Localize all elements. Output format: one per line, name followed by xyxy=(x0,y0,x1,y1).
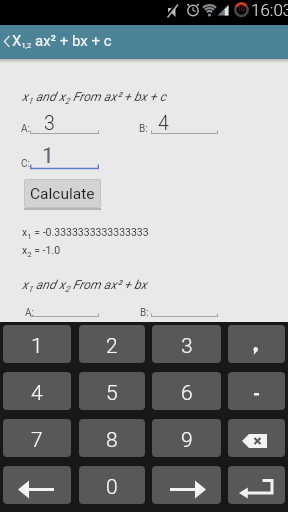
staticText: C: xyxy=(21,158,30,170)
button[interactable]: Calculate xyxy=(24,179,101,208)
staticText: 4 xyxy=(31,381,43,406)
button[interactable]: 8 xyxy=(79,419,145,457)
button[interactable]: 4 xyxy=(151,112,219,134)
button[interactable]: 9 xyxy=(152,419,221,457)
button[interactable] xyxy=(228,372,285,410)
staticText: x2 = -1.0 xyxy=(22,244,61,259)
staticText: 3 xyxy=(44,112,55,134)
staticText: A: xyxy=(25,307,34,319)
button[interactable] xyxy=(228,325,285,363)
button[interactable] xyxy=(0,25,26,59)
staticText: 9 xyxy=(181,428,193,453)
button[interactable] xyxy=(152,466,221,504)
staticText: 3 xyxy=(181,334,193,359)
button[interactable]: 7 xyxy=(3,419,71,457)
button[interactable]: 3 xyxy=(30,112,99,134)
staticText: Calculate xyxy=(30,185,95,203)
staticText: x1 and x2 From ax² + bx + c xyxy=(22,89,167,106)
button[interactable]: 1 xyxy=(3,325,71,363)
staticText: 5 xyxy=(106,381,118,406)
staticText: ax² + bx + c xyxy=(35,32,112,50)
button[interactable]: 6 xyxy=(152,372,221,410)
staticText: X1,2 xyxy=(12,32,32,50)
button[interactable] xyxy=(228,419,285,457)
staticText: 8 xyxy=(106,428,118,453)
button[interactable]: 3 xyxy=(152,325,221,363)
staticText: B: xyxy=(140,307,149,319)
staticText: A: xyxy=(21,123,30,135)
staticText: 10 xyxy=(237,5,245,13)
staticText: 1 xyxy=(42,145,53,168)
staticText: 16:03 xyxy=(251,0,288,20)
staticText: 0 xyxy=(106,475,118,500)
button[interactable]: 5 xyxy=(79,372,145,410)
button[interactable]: 0 xyxy=(79,466,145,504)
staticText: 1 xyxy=(31,334,43,359)
button[interactable] xyxy=(228,466,285,504)
staticText: 4 xyxy=(158,112,169,134)
staticText: 7 xyxy=(31,428,43,453)
staticText: x1 and x2 From ax² + bx xyxy=(22,277,147,294)
staticText: 2 xyxy=(106,334,118,359)
staticText: B: xyxy=(139,123,148,135)
button[interactable]: 1 xyxy=(30,145,99,168)
button[interactable] xyxy=(3,466,71,504)
button[interactable]: 4 xyxy=(3,372,71,410)
staticText: 6 xyxy=(181,381,193,406)
staticText: x1 = -0.3333333333333333 xyxy=(22,226,149,241)
button[interactable]: 2 xyxy=(79,325,145,363)
